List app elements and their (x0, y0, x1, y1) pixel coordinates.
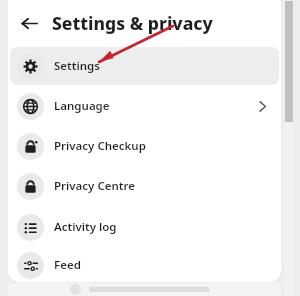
button[interactable]: Privacy Centre (10, 167, 279, 205)
button[interactable]: Activity log (10, 207, 279, 247)
staticText: Privacy Checkup (54, 138, 146, 154)
button[interactable]: Feed (10, 249, 279, 281)
button[interactable]: Back (14, 8, 44, 38)
button[interactable]: Language (10, 87, 279, 125)
staticText: Activity log (54, 219, 117, 235)
staticText: Settings (54, 58, 100, 74)
button[interactable]: Privacy Checkup (10, 127, 279, 165)
staticText: Settings & privacy (52, 11, 213, 35)
staticText: Language (54, 98, 110, 114)
staticText: Feed (54, 257, 81, 273)
button[interactable]: Settings (10, 47, 279, 85)
staticText: Privacy Centre (54, 178, 135, 194)
